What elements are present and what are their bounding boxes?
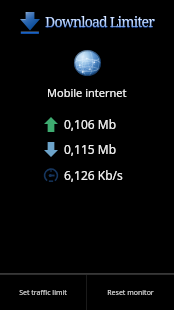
staticText: Mobile internet (47, 85, 127, 100)
staticText: 6,126 Kb/s (64, 167, 123, 183)
staticText: Download Limiter (45, 12, 155, 31)
button[interactable]: Reset monitor (87, 275, 174, 310)
staticText: Download Limiter (45, 12, 155, 31)
staticText: 0,106 Mb (64, 116, 117, 132)
other: Download (20, 12, 40, 34)
staticText: Reset monitor (107, 288, 154, 298)
other: Speed (44, 168, 58, 183)
staticText: Download Limiter (45, 12, 155, 31)
other: Download traffic (44, 142, 58, 157)
staticText: 0,115 Mb (64, 141, 117, 157)
staticText: Set traffic limit (19, 288, 67, 298)
button[interactable]: Set traffic limit (0, 275, 86, 310)
other: Network (74, 50, 101, 76)
staticText: Download Limiter (45, 13, 155, 32)
other: Upload (44, 117, 58, 132)
